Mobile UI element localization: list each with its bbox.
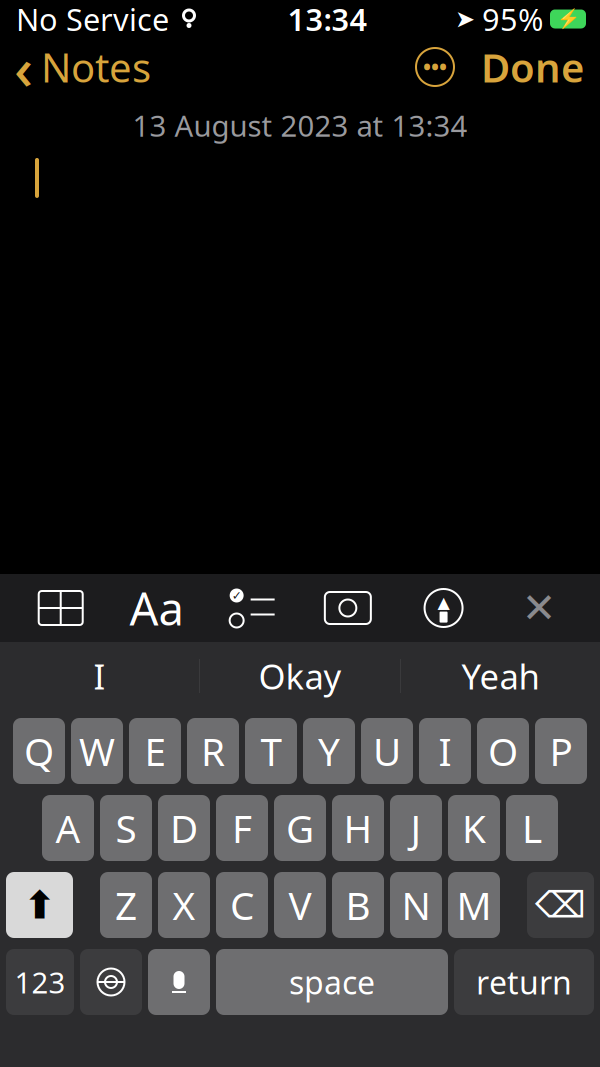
staticText: J <box>410 802 421 854</box>
button[interactable]: D <box>158 795 210 861</box>
button[interactable]: C <box>216 872 268 938</box>
button[interactable]: B <box>332 872 384 938</box>
staticText: 13 August 2023 at 13:34 <box>132 106 467 145</box>
staticText: S <box>115 802 136 854</box>
button[interactable]: I <box>419 718 471 784</box>
button[interactable]: S <box>100 795 152 861</box>
staticText: Y <box>318 725 340 777</box>
staticText: return <box>476 961 572 1003</box>
button[interactable]: E <box>129 718 181 784</box>
staticText: 95% <box>482 0 543 39</box>
staticText: ✓ <box>232 589 242 602</box>
button[interactable]: Camera <box>313 574 383 642</box>
button[interactable]: L <box>506 795 558 861</box>
button[interactable]: O <box>477 718 529 784</box>
staticText: A <box>55 802 80 854</box>
button[interactable]: I <box>0 642 199 710</box>
staticText: R <box>201 725 225 777</box>
button[interactable]: 123 <box>6 949 74 1015</box>
button[interactable]: V <box>274 872 326 938</box>
staticText: ⌫ <box>535 885 586 925</box>
staticText: Yeah <box>461 653 539 699</box>
staticText: N <box>401 879 430 931</box>
button[interactable]: Dictate <box>148 949 210 1015</box>
staticText: B <box>345 879 370 931</box>
staticText: X <box>172 879 195 931</box>
staticText: P <box>549 725 572 777</box>
button[interactable]: J <box>390 795 442 861</box>
button[interactable]: U <box>361 718 413 784</box>
staticText: V <box>288 879 311 931</box>
staticText: L <box>522 802 542 854</box>
staticText: Notes <box>41 40 151 93</box>
button[interactable]: M <box>448 872 500 938</box>
button[interactable]: H <box>332 795 384 861</box>
button[interactable]: X <box>158 872 210 938</box>
button[interactable]: Checklist <box>217 574 287 642</box>
staticText: H <box>343 802 372 854</box>
button[interactable]: ‹ <box>0 38 163 96</box>
staticText: G <box>286 802 314 854</box>
staticText: E <box>144 725 165 777</box>
button[interactable]: W <box>71 718 123 784</box>
button[interactable]: R <box>187 718 239 784</box>
button[interactable]: Next keyboard <box>80 949 142 1015</box>
staticText: ⚡ <box>556 8 579 30</box>
staticText: Q <box>24 725 54 777</box>
staticText: ▲ <box>438 593 450 612</box>
staticText: Done <box>481 40 584 93</box>
button[interactable]: A <box>42 795 94 861</box>
staticText: K <box>462 802 486 854</box>
button[interactable]: Shift <box>6 872 73 938</box>
staticText: M <box>456 879 491 931</box>
button[interactable]: Hide keyboard <box>504 574 574 642</box>
button[interactable]: T <box>245 718 297 784</box>
staticText: 13:34 <box>287 0 367 39</box>
staticText: ‹ <box>14 28 33 106</box>
staticText: ✕ <box>522 584 557 631</box>
staticText: C <box>230 879 254 931</box>
staticText: Okay <box>258 653 341 699</box>
staticText: Aa <box>129 578 183 638</box>
staticText: U <box>373 725 401 777</box>
button[interactable]: space <box>216 949 448 1015</box>
button[interactable]: Done <box>465 38 600 96</box>
staticText: D <box>170 802 198 854</box>
staticText: T <box>260 725 281 777</box>
staticText: 123 <box>14 962 65 1001</box>
button[interactable]: N <box>390 872 442 938</box>
button[interactable]: Okay <box>200 642 400 710</box>
button[interactable]: Markup <box>409 574 479 642</box>
staticText: ⬆ <box>23 883 55 927</box>
button[interactable]: K <box>448 795 500 861</box>
button[interactable]: Format text <box>121 574 191 642</box>
staticText: No Service <box>16 0 169 39</box>
staticText: ➤ <box>455 5 475 33</box>
button[interactable]: P <box>535 718 587 784</box>
staticText: W <box>79 725 115 777</box>
button[interactable]: return <box>454 949 594 1015</box>
button[interactable]: Q <box>13 718 65 784</box>
button[interactable]: More options <box>405 38 465 96</box>
staticText: Z <box>115 879 137 931</box>
staticText: ••• <box>423 53 447 81</box>
button[interactable]: Insert table <box>26 574 96 642</box>
staticText: space <box>289 961 375 1003</box>
button[interactable]: F <box>216 795 268 861</box>
staticText: F <box>232 802 252 854</box>
staticText: I <box>438 725 451 777</box>
staticText: O <box>488 725 518 777</box>
button[interactable]: G <box>274 795 326 861</box>
staticText: I <box>93 653 105 699</box>
button[interactable]: Z <box>100 872 152 938</box>
button[interactable]: Yeah <box>401 642 600 710</box>
button[interactable]: Y <box>303 718 355 784</box>
button[interactable]: Delete <box>527 872 594 938</box>
